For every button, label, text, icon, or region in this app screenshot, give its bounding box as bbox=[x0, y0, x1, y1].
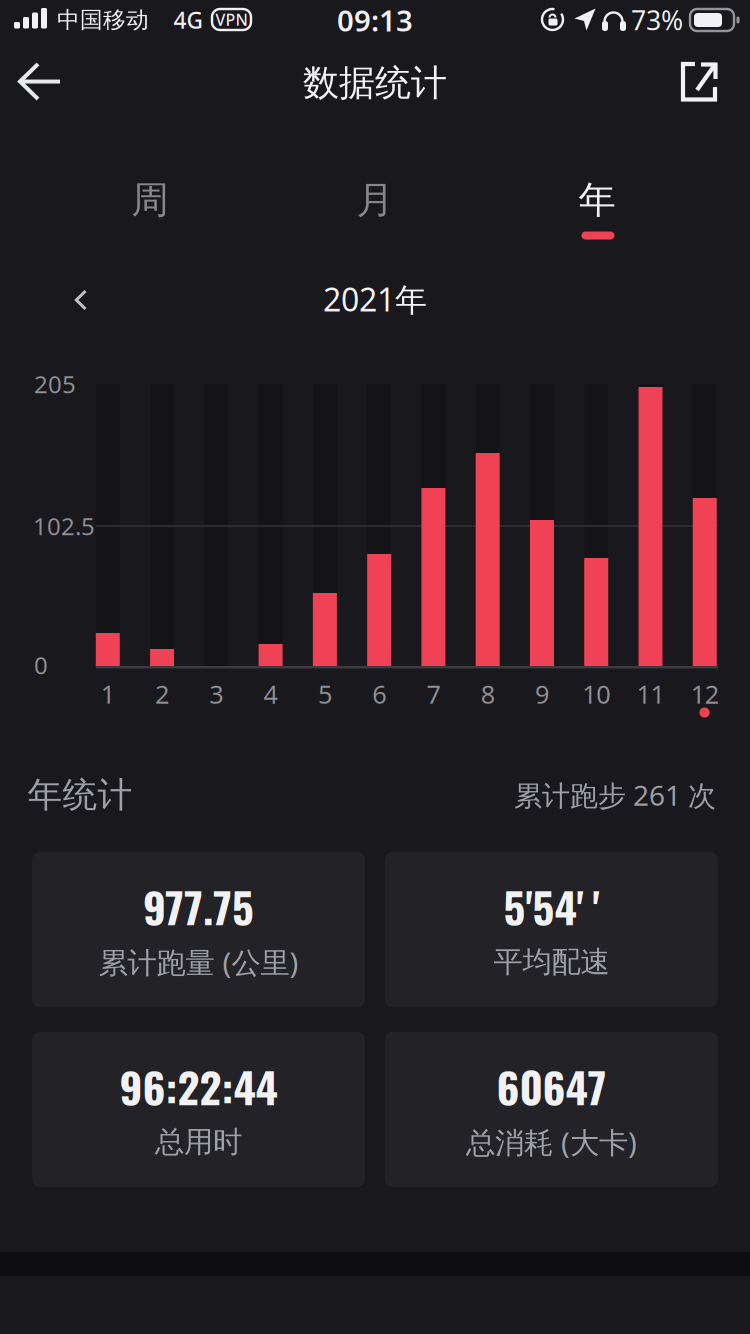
button[interactable]: Previous year bbox=[61, 280, 101, 320]
staticText: 2 bbox=[155, 677, 169, 711]
staticText: 累计跑量 (公里) bbox=[98, 942, 298, 981]
staticText: 3 bbox=[209, 677, 223, 711]
staticText: VPN bbox=[215, 9, 247, 30]
staticText: 73% bbox=[631, 2, 683, 38]
staticText: 数据统计 bbox=[303, 61, 447, 105]
staticText: 2021年 bbox=[323, 278, 427, 320]
staticText: 总用时 bbox=[155, 1124, 242, 1160]
staticText: 09:13 bbox=[337, 0, 413, 39]
staticText: 9 bbox=[535, 677, 549, 711]
button[interactable]: Share bbox=[671, 54, 727, 110]
staticText: 年 bbox=[578, 177, 615, 223]
button[interactable]: Back bbox=[9, 57, 73, 105]
staticText: 205 bbox=[34, 368, 76, 400]
staticText: 6 bbox=[372, 677, 386, 711]
button[interactable]: 年 bbox=[537, 170, 657, 230]
staticText: 0 bbox=[34, 649, 48, 681]
staticText: 11 bbox=[636, 677, 664, 711]
staticText: 月 bbox=[356, 177, 393, 223]
staticText: 12 bbox=[691, 677, 719, 711]
staticText: 5'54' ' bbox=[503, 874, 599, 938]
staticText: 5 bbox=[318, 677, 332, 711]
staticText: 60647 bbox=[496, 1054, 606, 1118]
staticText: 年统计 bbox=[27, 774, 132, 816]
staticText: 周 bbox=[131, 177, 168, 223]
staticText: 累计跑步 261 次 bbox=[514, 776, 716, 814]
staticText: 4G bbox=[173, 5, 202, 35]
staticText: 8 bbox=[481, 677, 495, 711]
button[interactable]: 周 bbox=[90, 170, 210, 230]
staticText: 中国移动 bbox=[57, 6, 149, 34]
staticText: 4 bbox=[264, 677, 278, 711]
staticText: 96:22:44 bbox=[119, 1054, 277, 1118]
staticText: 977.75 bbox=[143, 874, 254, 938]
staticText: 10 bbox=[582, 677, 610, 711]
staticText: 1 bbox=[101, 677, 115, 711]
staticText: 平均配速 bbox=[493, 944, 609, 980]
staticText: 7 bbox=[426, 677, 440, 711]
button[interactable]: 月 bbox=[315, 170, 435, 230]
staticText: 102.5 bbox=[33, 510, 95, 542]
staticText: 总消耗 (大卡) bbox=[466, 1122, 637, 1161]
